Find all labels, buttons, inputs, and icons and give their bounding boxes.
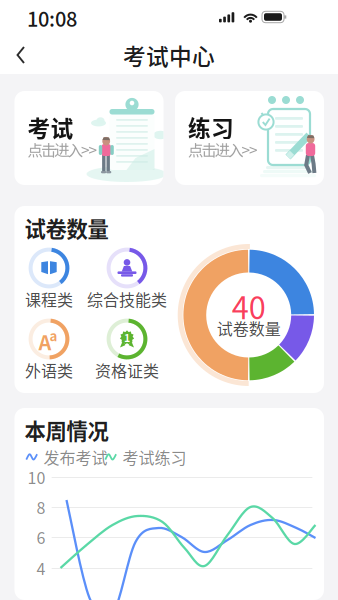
staticText: 资格证类 [95,358,159,382]
button[interactable]: 练习 [175,91,324,185]
staticText: 本周情况 [24,415,108,445]
staticText: 练习 [188,111,234,143]
staticText: A [38,327,51,356]
staticText: 考试练习 [122,445,186,469]
staticText: 点击进入>> [188,138,258,160]
staticText: 外语类 [25,358,73,382]
staticText: 点击进入>> [27,138,97,160]
staticText: 试卷数量 [24,213,108,243]
staticText: a [49,326,57,345]
staticText: 发布考试 [43,445,107,469]
staticText: 8 [36,495,45,519]
button[interactable]: 考试 [14,91,163,185]
staticText: 1 [124,330,130,345]
staticText: 40 [232,284,266,328]
staticText: 考试 [27,111,73,143]
button[interactable]: Back [8,36,52,74]
staticText: 10:08 [27,3,77,32]
staticText: 课程类 [25,287,73,311]
staticText: 6 [36,525,45,549]
staticText: 10 [27,465,45,489]
staticText: 综合技能类 [87,287,167,311]
staticText: 试卷数量 [217,316,281,340]
staticText: 4 [36,556,45,580]
staticText: 考试中心 [123,39,215,71]
